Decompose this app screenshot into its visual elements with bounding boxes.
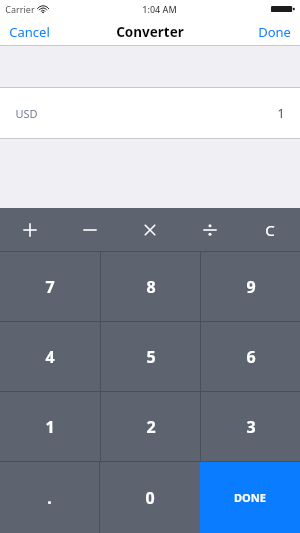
- staticText: 1:04 AM: [142, 3, 177, 15]
- staticText: 2: [146, 416, 156, 438]
- staticText: USD: [15, 106, 38, 121]
- button[interactable]: 3: [201, 392, 300, 461]
- staticText: 5: [146, 346, 156, 368]
- button[interactable]: Cancel: [0, 18, 59, 46]
- button[interactable]: Done: [249, 18, 300, 46]
- staticText: Converter: [116, 23, 184, 41]
- staticText: C: [265, 220, 275, 240]
- staticText: Carrier: [5, 3, 35, 15]
- staticText: 6: [246, 346, 256, 368]
- button[interactable]: Add: [0, 208, 60, 251]
- staticText: 3: [246, 416, 256, 438]
- button[interactable]: 2: [101, 392, 200, 461]
- button[interactable]: C: [240, 208, 300, 251]
- button[interactable]: 9: [201, 252, 300, 321]
- button[interactable]: DONE: [200, 462, 300, 533]
- staticText: 1: [45, 416, 55, 438]
- button[interactable]: Divide: [180, 208, 240, 251]
- button[interactable]: 8: [101, 252, 200, 321]
- staticText: DONE: [234, 490, 266, 505]
- button[interactable]: Subtract: [60, 208, 120, 251]
- button[interactable]: 4: [0, 322, 100, 391]
- button[interactable]: USD: [0, 88, 300, 138]
- staticText: 1: [277, 104, 285, 122]
- staticText: .: [47, 487, 52, 509]
- button[interactable]: 0: [100, 462, 200, 533]
- button[interactable]: 6: [201, 322, 300, 391]
- staticText: 7: [45, 276, 55, 298]
- staticText: 9: [246, 276, 256, 298]
- button[interactable]: .: [0, 462, 99, 533]
- button[interactable]: 7: [0, 252, 100, 321]
- button[interactable]: Multiply: [120, 208, 180, 251]
- staticText: 4: [45, 346, 55, 368]
- staticText: Cancel: [9, 23, 50, 41]
- staticText: Done: [258, 23, 291, 41]
- staticText: 0: [145, 487, 155, 509]
- button[interactable]: 5: [101, 322, 200, 391]
- staticText: 8: [146, 276, 156, 298]
- button[interactable]: 1: [0, 392, 100, 461]
